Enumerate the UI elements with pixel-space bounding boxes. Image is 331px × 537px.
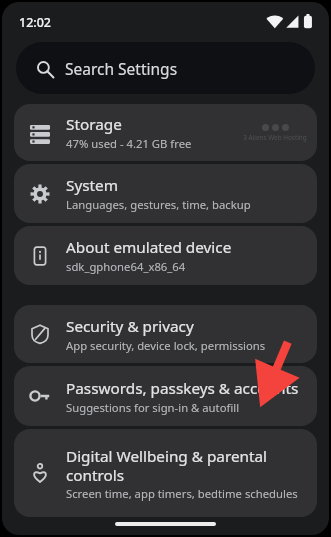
button[interactable]: Security & privacy — [14, 305, 317, 363]
staticText: 47% used - 4.21 GB free — [66, 136, 192, 151]
staticText: Screen time, app timers, bedtime schedul… — [66, 486, 298, 501]
staticText: Suggestions for sign-in & autofill — [66, 400, 240, 415]
staticText: Storage — [66, 114, 122, 135]
staticText: Languages, gestures, time, backup — [66, 197, 251, 212]
staticText: 3 Aliens Web Hosting — [243, 133, 307, 142]
staticText: App security, device lock, permissions — [66, 338, 266, 353]
staticText: Digital Wellbeing & parental controls — [66, 446, 268, 485]
staticText: Security & privacy — [66, 316, 194, 337]
button[interactable]: About emulated device — [14, 226, 317, 285]
button[interactable]: Storage — [14, 104, 317, 161]
staticText: Search Settings — [65, 58, 178, 79]
staticText: System — [66, 175, 118, 196]
staticText: About emulated device — [66, 237, 232, 258]
staticText: Passwords, passkeys & accounts — [66, 378, 299, 399]
button[interactable]: System — [14, 164, 317, 223]
staticText: sdk_gphone64_x86_64 — [66, 259, 186, 274]
staticText: 12:02 — [19, 14, 52, 31]
button[interactable]: Digital Wellbeing & parental controls — [14, 429, 317, 517]
button[interactable]: Passwords, passkeys & accounts — [14, 366, 317, 426]
button[interactable]: Search Settings — [16, 42, 315, 94]
